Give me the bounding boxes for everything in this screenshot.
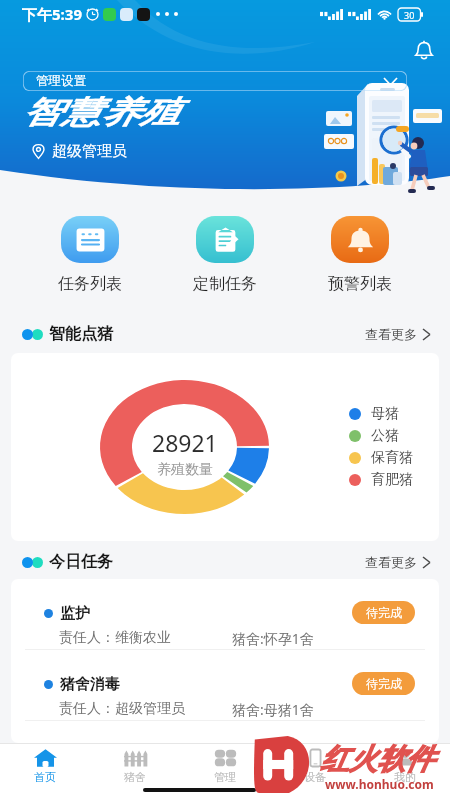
staticText: 30 [404, 9, 415, 21]
button[interactable]: 首页 [0, 744, 90, 800]
button[interactable]: Notifications [409, 35, 439, 65]
staticText: 下午5:39 [22, 4, 82, 24]
staticText: 待完成 [366, 676, 402, 691]
button[interactable]: 监护 [11, 579, 439, 649]
staticText: 管理设置 [36, 73, 86, 89]
button[interactable]: 猪舍 [90, 744, 180, 800]
staticText: 养殖数量 [157, 461, 213, 479]
staticText: 28921 [152, 427, 218, 458]
button[interactable]: 待完成 [352, 672, 415, 695]
staticText: www.honhuo.com [325, 776, 434, 792]
staticText: 智慧养殖 [22, 93, 179, 132]
staticText: 智能点猪 [49, 324, 113, 344]
staticText: 猪舍消毒 [60, 675, 120, 694]
staticText: 任务列表 [58, 274, 122, 294]
staticText: 监护 [60, 604, 90, 623]
button[interactable]: 巡检 [11, 721, 439, 743]
button[interactable]: 管理设置 [23, 71, 407, 91]
staticText: 责任人：超级管理员 [59, 700, 185, 718]
button[interactable]: 定制任务 [193, 216, 257, 294]
staticText: 待完成 [366, 605, 402, 620]
staticText: 今日任务 [49, 552, 113, 572]
staticText: 保育猪 [371, 449, 413, 467]
staticText: 我的 [394, 770, 416, 784]
staticText: 管理 [214, 770, 236, 784]
button[interactable]: 查看更多 [365, 554, 430, 570]
staticText: 查看更多 [365, 326, 417, 342]
staticText: 猪舍:怀孕1舍 [232, 629, 314, 648]
staticText: 猪舍:母猪1舍 [232, 700, 314, 719]
button[interactable]: 待完成 [352, 601, 415, 624]
staticText: 预警列表 [328, 274, 392, 294]
staticText: 定制任务 [193, 274, 257, 294]
staticText: 查看更多 [365, 554, 417, 570]
staticText: 猪舍 [124, 770, 146, 784]
button[interactable]: 任务列表 [58, 216, 122, 294]
staticText: 公猪 [371, 427, 399, 445]
button[interactable]: 管理 [180, 744, 270, 800]
button[interactable]: 设备 [270, 744, 360, 800]
button[interactable]: 预警列表 [328, 216, 392, 294]
staticText: 首页 [34, 770, 56, 784]
button[interactable]: 猪舍消毒 [11, 650, 439, 720]
staticText: 母猪 [371, 405, 399, 423]
staticText: 红火软件 [320, 741, 434, 778]
button[interactable]: 我的 [360, 744, 450, 800]
staticText: 育肥猪 [371, 471, 413, 489]
staticText: 设备 [304, 770, 326, 784]
staticText: 责任人：维衡农业 [59, 629, 171, 647]
button[interactable]: 查看更多 [365, 326, 430, 342]
staticText: 超级管理员 [52, 142, 127, 161]
